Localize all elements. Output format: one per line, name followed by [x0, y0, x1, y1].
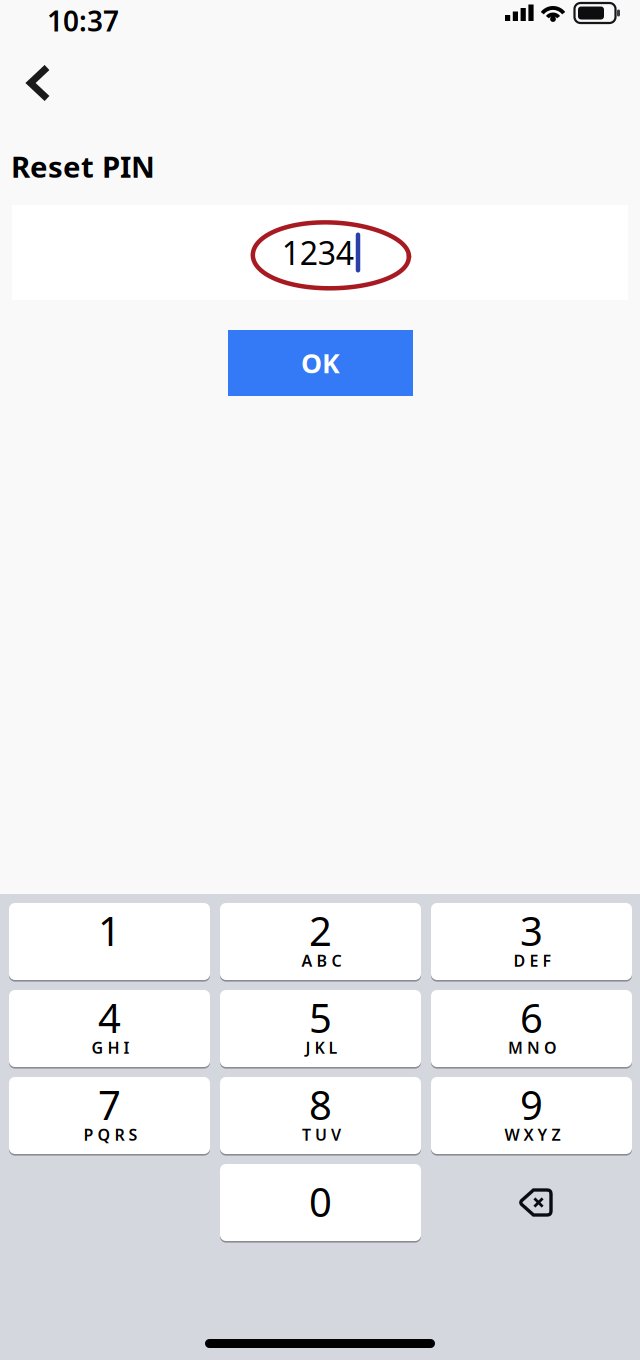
staticText: OK: [301, 345, 340, 381]
staticText: 6: [520, 991, 543, 1044]
button[interactable]: 5: [220, 990, 421, 1067]
staticText: W X Y Z: [504, 1124, 560, 1145]
button[interactable]: 0: [220, 1164, 421, 1241]
button[interactable]: Delete: [431, 1164, 632, 1241]
staticText: A B C: [301, 950, 341, 971]
staticText: 3: [520, 904, 543, 957]
button[interactable]: 4: [9, 990, 210, 1067]
staticText: Reset PIN: [11, 147, 155, 186]
staticText: M N O: [508, 1037, 557, 1058]
staticText: P Q R S: [83, 1124, 137, 1145]
staticText: 9: [520, 1078, 543, 1131]
staticText: 4: [98, 991, 121, 1044]
staticText: 0: [309, 1175, 332, 1228]
staticText: 1: [98, 904, 121, 957]
staticText: 2: [309, 904, 332, 957]
staticText: D E F: [513, 950, 551, 971]
staticText: 10:37: [47, 2, 119, 39]
staticText: 1234: [282, 231, 354, 274]
button[interactable]: Back: [0, 50, 78, 116]
staticText: T U V: [302, 1124, 341, 1145]
button[interactable]: OK: [228, 330, 413, 396]
staticText: 5: [309, 991, 332, 1044]
staticText: J K L: [305, 1037, 337, 1058]
button[interactable]: 2: [220, 903, 421, 980]
button[interactable]: 1: [9, 903, 210, 980]
button[interactable]: 9: [431, 1077, 632, 1154]
staticText: 7: [98, 1078, 121, 1131]
button[interactable]: 3: [431, 903, 632, 980]
button[interactable]: 1234: [12, 205, 628, 300]
button[interactable]: 8: [220, 1077, 421, 1154]
button[interactable]: 6: [431, 990, 632, 1067]
button[interactable]: 7: [9, 1077, 210, 1154]
staticText: 8: [309, 1078, 332, 1131]
staticText: G H I: [91, 1037, 129, 1058]
